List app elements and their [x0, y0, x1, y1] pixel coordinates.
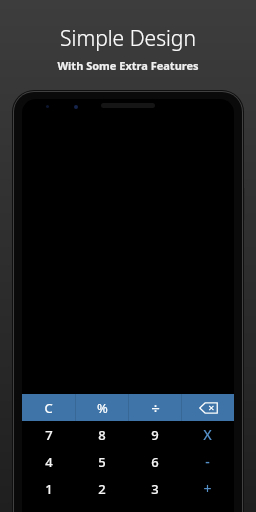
staticText: 2 [98, 480, 106, 498]
staticText: 1 [45, 480, 53, 498]
button[interactable]: Backspace [182, 394, 234, 421]
staticText: 5 [98, 453, 106, 471]
staticText: + [203, 479, 212, 498]
button[interactable]: % [76, 394, 128, 421]
button[interactable]: X [181, 421, 234, 448]
staticText: 3 [151, 480, 159, 498]
staticText: 6 [151, 453, 159, 471]
button[interactable]: 1 [22, 475, 75, 502]
button[interactable]: 2 [75, 475, 128, 502]
button[interactable]: 4 [22, 448, 75, 475]
button[interactable]: 5 [75, 448, 128, 475]
staticText: 9 [151, 426, 159, 444]
staticText: - [205, 452, 210, 471]
button[interactable]: 9 [128, 421, 181, 448]
button[interactable]: 8 [75, 421, 128, 448]
button[interactable]: ÷ [129, 394, 181, 421]
button[interactable]: 7 [22, 421, 75, 448]
button[interactable]: + [181, 475, 234, 502]
staticText: With Some Extra Features [57, 58, 199, 73]
staticText: 8 [98, 426, 106, 444]
button[interactable]: - [181, 448, 234, 475]
staticText: 4 [45, 453, 53, 471]
button[interactable]: 3 [128, 475, 181, 502]
button[interactable]: 6 [128, 448, 181, 475]
staticText: % [97, 399, 108, 417]
staticText: C [44, 399, 53, 417]
button[interactable]: C [22, 394, 75, 421]
staticText: 7 [45, 426, 53, 444]
staticText: ÷ [151, 398, 160, 418]
staticText: Simple Design [60, 24, 196, 53]
staticText: X [203, 425, 212, 444]
